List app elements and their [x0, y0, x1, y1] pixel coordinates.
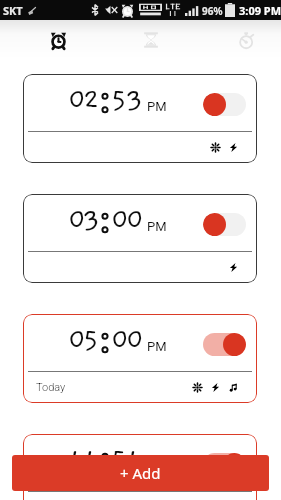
button[interactable]: Toggle alarm: [203, 213, 246, 236]
staticText: AM: [147, 459, 167, 474]
staticText: PM: [147, 219, 167, 234]
button[interactable]: Toggle alarm: [203, 93, 246, 116]
staticText: 1: [68, 444, 83, 476]
staticText: 3: [126, 84, 144, 116]
staticText: 0: [126, 204, 146, 236]
button[interactable]: Stopwatch: [234, 20, 258, 60]
staticText: 1: [126, 444, 141, 476]
staticText: 1: [83, 444, 98, 476]
staticText: 0: [68, 84, 88, 116]
button[interactable]: + Add: [12, 455, 269, 491]
button[interactable]: 0: [23, 314, 257, 403]
staticText: 0: [111, 204, 131, 236]
button[interactable]: 1: [23, 434, 257, 500]
staticText: SKT: [3, 3, 23, 18]
staticText: 5: [111, 84, 128, 116]
staticText: PM: [147, 339, 167, 354]
staticText: 96%: [202, 4, 223, 18]
staticText: 0: [126, 324, 146, 356]
staticText: + Add: [120, 463, 161, 483]
button[interactable]: Alarm: [46, 20, 70, 60]
staticText: Today: [36, 381, 66, 394]
staticText: 5: [111, 444, 128, 476]
staticText: 0: [111, 324, 131, 356]
staticText: PM: [147, 99, 167, 114]
button[interactable]: Toggle alarm: [203, 333, 246, 356]
staticText: 2: [83, 84, 101, 116]
button[interactable]: 0: [23, 194, 257, 283]
staticText: 5: [83, 324, 100, 356]
staticText: 3: [83, 204, 101, 236]
staticText: 0: [68, 204, 88, 236]
button[interactable]: Toggle alarm: [203, 453, 246, 476]
staticText: 0: [68, 324, 88, 356]
button[interactable]: Timer: [139, 20, 163, 60]
button[interactable]: 0: [23, 74, 257, 163]
staticText: 3:09 PM: [239, 3, 281, 18]
